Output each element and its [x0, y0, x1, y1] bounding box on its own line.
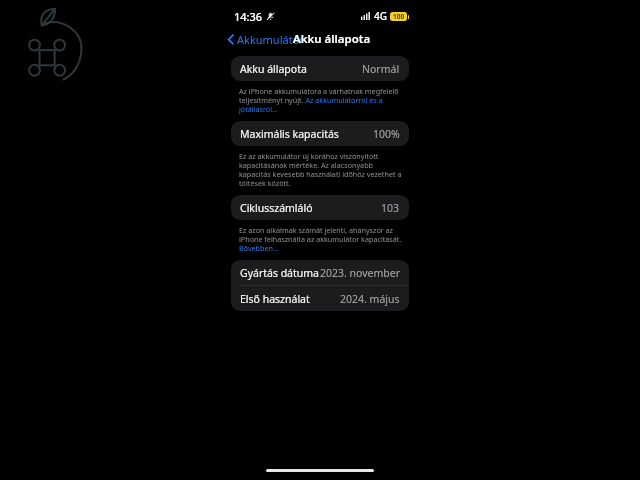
button[interactable]: Ciklusszámláló: [231, 195, 409, 220]
staticText: Akku állapota: [293, 31, 371, 47]
button[interactable]: Gyártás dátuma: [231, 260, 409, 285]
staticText: 14:36: [234, 9, 263, 24]
staticText: Maximális kapacitás: [240, 127, 339, 141]
staticText: 100: [393, 12, 405, 21]
staticText: Az iPhone akkumulátora a várhatnak megfe…: [239, 86, 403, 115]
staticText: 2024. május: [340, 292, 400, 306]
staticText: Ez az akkumulátor új korához viszonyítot…: [239, 151, 403, 189]
staticText: 103: [381, 201, 400, 215]
staticText: Ez azon alkalmak számát jelenti, ahánysz…: [239, 225, 403, 254]
staticText: 4G: [374, 9, 387, 23]
staticText: Gyártás dátuma: [240, 266, 320, 280]
staticText: 2023. november: [320, 266, 400, 280]
button[interactable]: Maximális kapacitás: [231, 121, 409, 146]
staticText: Akku állapota: [240, 62, 307, 76]
staticText: Normál: [362, 62, 400, 76]
button[interactable]: Első használat: [231, 286, 409, 311]
staticText: Ciklusszámláló: [240, 201, 313, 215]
staticText: Akkumulátor: [237, 32, 304, 46]
staticText: Első használat: [240, 292, 310, 306]
button[interactable]: Akkumulátor: [226, 30, 306, 48]
staticText: 100%: [373, 127, 400, 141]
button[interactable]: Akku állapota: [231, 56, 409, 81]
